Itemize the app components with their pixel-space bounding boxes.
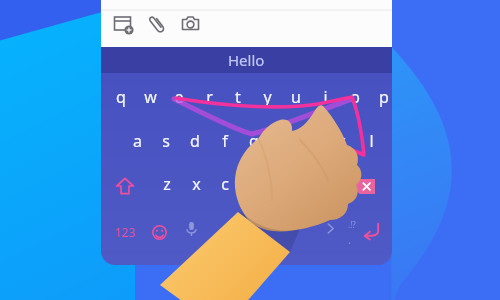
staticText: g xyxy=(249,130,259,152)
button[interactable]: q xyxy=(108,83,134,111)
button[interactable]: Camera xyxy=(179,12,203,36)
staticText: i xyxy=(323,86,328,108)
staticText: q xyxy=(116,86,126,108)
button[interactable]: Comma xyxy=(209,218,235,244)
button[interactable]: Backspace xyxy=(349,171,379,201)
button[interactable]: Next xyxy=(317,215,343,241)
button[interactable]: y xyxy=(254,83,280,111)
staticText: c xyxy=(221,173,229,195)
staticText: .!? xyxy=(348,219,356,230)
button[interactable]: Shift xyxy=(110,171,140,201)
staticText: a xyxy=(133,130,142,152)
button[interactable]: s xyxy=(153,127,179,155)
button[interactable]: z xyxy=(154,170,180,198)
staticText: u xyxy=(291,86,301,108)
staticText: . xyxy=(348,232,351,247)
staticText: f xyxy=(222,130,228,152)
button[interactable]: Emoji xyxy=(145,218,173,246)
staticText: w xyxy=(144,86,157,108)
staticText: Hello xyxy=(228,50,265,70)
button[interactable]: h xyxy=(270,127,296,155)
button[interactable]: t xyxy=(225,83,251,111)
button[interactable]: c xyxy=(212,170,238,198)
button[interactable]: w xyxy=(137,83,163,111)
button[interactable]: d xyxy=(182,127,208,155)
button[interactable]: Insert image xyxy=(111,12,135,36)
button[interactable]: u xyxy=(283,83,309,111)
button[interactable]: .!? xyxy=(339,211,365,237)
button[interactable]: Period xyxy=(339,229,359,249)
staticText: r xyxy=(206,86,213,108)
button[interactable]: p xyxy=(371,83,392,111)
button[interactable]: Attach file xyxy=(145,12,169,36)
button[interactable]: j xyxy=(299,127,325,155)
button[interactable]: i xyxy=(312,83,338,111)
button[interactable]: 123 xyxy=(108,218,142,246)
staticText: y xyxy=(263,86,272,108)
staticText: l xyxy=(369,130,374,152)
button[interactable]: Enter xyxy=(356,216,384,244)
button[interactable]: f xyxy=(212,127,238,155)
staticText: t xyxy=(235,86,241,108)
button[interactable]: e xyxy=(166,83,192,111)
staticText: s xyxy=(162,130,170,152)
button[interactable]: l xyxy=(358,127,384,155)
staticText: e xyxy=(174,86,184,108)
staticText: p xyxy=(379,86,389,108)
button[interactable]: k xyxy=(328,127,354,155)
button[interactable]: o xyxy=(342,83,368,111)
staticText: o xyxy=(350,86,360,108)
button[interactable]: Previous xyxy=(231,215,257,241)
button[interactable]: x xyxy=(183,170,209,198)
button[interactable]: Hello xyxy=(101,47,392,73)
button[interactable]: a xyxy=(124,127,150,155)
staticText: , xyxy=(221,224,224,239)
button[interactable]: r xyxy=(196,83,222,111)
button[interactable]: Space xyxy=(259,221,315,241)
staticText: d xyxy=(190,130,200,152)
button[interactable]: g xyxy=(241,127,267,155)
staticText: x xyxy=(192,173,201,195)
staticText: k xyxy=(337,130,346,152)
staticText: z xyxy=(163,173,171,195)
button[interactable]: Voice input xyxy=(178,216,204,242)
staticText: 123 xyxy=(115,224,136,240)
